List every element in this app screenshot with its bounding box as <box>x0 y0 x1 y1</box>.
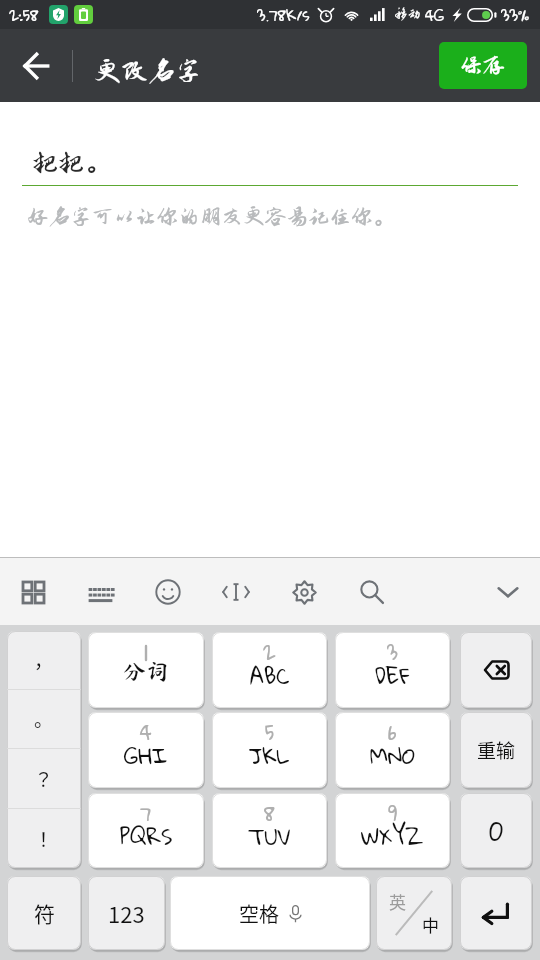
button[interactable]: ！ <box>7 809 81 868</box>
staticText: 4 <box>140 713 152 751</box>
button[interactable]: 重输 <box>460 712 532 788</box>
staticText: ， <box>34 646 54 674</box>
button[interactable]: Move cursor <box>215 571 257 613</box>
staticText: 33% <box>501 0 530 29</box>
staticText: 6 <box>388 713 397 751</box>
staticText: PQRS <box>120 815 173 857</box>
button[interactable]: 分词 <box>88 632 204 708</box>
button[interactable]: Search <box>351 571 393 613</box>
button[interactable]: 空格 <box>170 876 370 950</box>
button[interactable]: 保存 <box>439 42 527 89</box>
staticText: 123 <box>108 897 145 929</box>
staticText: GHI <box>124 734 168 776</box>
staticText: 4G <box>425 0 445 29</box>
staticText: 3.78K/s <box>257 0 310 29</box>
staticText: TUV <box>248 815 291 857</box>
staticText: MNO <box>370 734 416 776</box>
button[interactable]: Backspace <box>460 632 532 708</box>
button[interactable]: 。 <box>7 690 81 748</box>
staticText: ？ <box>34 765 54 793</box>
button[interactable]: Switch input language <box>376 876 452 950</box>
button[interactable]: 符 <box>7 876 81 950</box>
button[interactable]: Keyboard <box>79 571 121 613</box>
staticText: 中 <box>422 912 439 937</box>
staticText: 0 <box>489 807 504 855</box>
button[interactable]: Apps <box>12 571 54 613</box>
staticText: 。 <box>34 705 54 733</box>
staticText: JKL <box>249 734 290 776</box>
staticText: 更改名字 <box>94 57 202 87</box>
button[interactable]: Enter <box>460 876 532 950</box>
button[interactable]: 2 <box>212 632 327 708</box>
staticText: 3 <box>387 633 398 671</box>
staticText: 8 <box>264 794 275 832</box>
staticText: 英 <box>389 889 406 914</box>
staticText: ！ <box>34 825 54 853</box>
button[interactable]: Hide keyboard <box>487 571 529 613</box>
staticText: 粑粑。 <box>32 148 114 177</box>
button[interactable]: Emoji <box>147 571 189 613</box>
staticText: 2:58 <box>9 0 39 29</box>
button[interactable]: Back <box>0 29 72 102</box>
staticText: 9 <box>388 794 398 832</box>
button[interactable]: 123 <box>88 876 165 950</box>
staticText: 重输 <box>477 736 516 764</box>
button[interactable]: 5 <box>212 712 327 788</box>
staticText: 5 <box>265 713 275 751</box>
staticText: WXYZ <box>361 815 424 857</box>
button[interactable]: 6 <box>335 712 450 788</box>
staticText: ABC <box>250 654 290 696</box>
button[interactable]: 9 <box>335 793 450 868</box>
staticText: 7 <box>140 794 152 832</box>
staticText: 符 <box>34 898 55 928</box>
button[interactable]: 0 <box>460 793 532 868</box>
button[interactable]: 7 <box>88 793 204 868</box>
staticText: 2 <box>263 633 276 671</box>
staticText: 空格 <box>239 899 279 928</box>
staticText: 分词 <box>123 660 169 683</box>
button[interactable]: ， <box>7 631 81 689</box>
staticText: DEF <box>375 654 410 696</box>
staticText: 好名字可以让你的朋友更容易记住你。 <box>27 205 397 229</box>
button[interactable]: ？ <box>7 749 81 808</box>
button[interactable]: 8 <box>212 793 327 868</box>
button[interactable]: 4 <box>88 712 204 788</box>
staticText: 保存 <box>460 53 506 78</box>
button[interactable]: Settings <box>283 571 325 613</box>
staticText: 移动 <box>394 7 422 22</box>
button[interactable]: 3 <box>335 632 450 708</box>
